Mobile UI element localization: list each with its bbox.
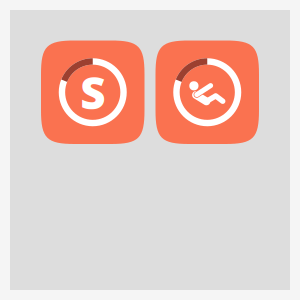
- staticText: S: [80, 63, 105, 121]
- button[interactable]: Steps: [41, 40, 144, 144]
- button[interactable]: Workout: [155, 40, 259, 144]
